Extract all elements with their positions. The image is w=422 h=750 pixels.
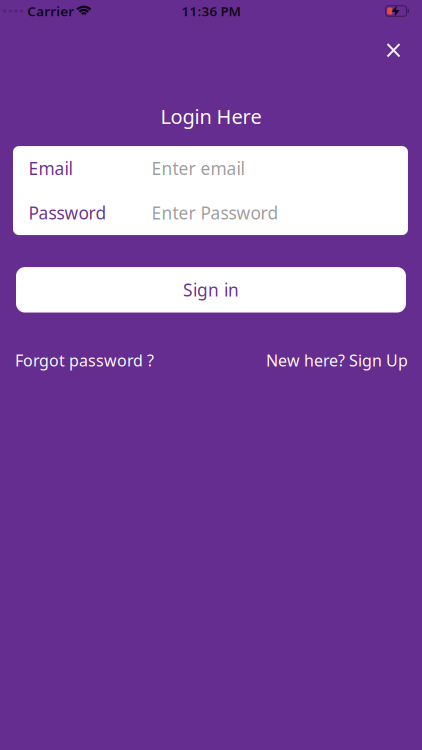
button[interactable]: Password, Enter Password bbox=[28, 191, 408, 235]
staticText: Password bbox=[28, 201, 106, 224]
button[interactable]: New here? Sign Up bbox=[266, 350, 408, 371]
staticText: Enter email bbox=[151, 157, 244, 180]
staticText: 11:36 PM bbox=[181, 2, 240, 20]
staticText: Carrier bbox=[27, 2, 74, 20]
button[interactable]: Sign in bbox=[16, 267, 406, 313]
staticText: New here? Sign Up bbox=[266, 350, 408, 371]
staticText: Enter Password bbox=[151, 201, 278, 224]
staticText: Forgot password ? bbox=[15, 350, 154, 371]
staticText: Login Here bbox=[160, 103, 261, 130]
button[interactable]: Forgot password ? bbox=[15, 350, 154, 371]
staticText: Email bbox=[28, 157, 72, 180]
staticText: Sign in bbox=[183, 278, 239, 301]
button[interactable]: Close bbox=[381, 38, 405, 62]
button[interactable]: Email, Enter email bbox=[28, 146, 408, 191]
